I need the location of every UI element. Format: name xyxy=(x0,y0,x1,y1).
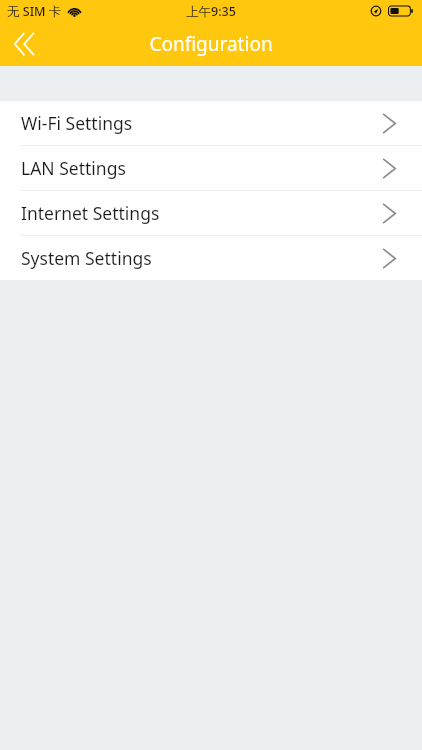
button[interactable]: Back xyxy=(0,22,54,66)
staticText: System Settings xyxy=(21,246,152,270)
button[interactable]: Internet Settings xyxy=(0,191,422,235)
button[interactable]: System Settings xyxy=(0,236,422,280)
staticText: Wi-Fi Settings xyxy=(21,111,133,135)
staticText: Configuration xyxy=(149,31,273,57)
staticText: LAN Settings xyxy=(21,156,126,180)
staticText: 上午9:35 xyxy=(186,3,236,20)
button[interactable]: LAN Settings xyxy=(0,146,422,190)
staticText: 无 SIM 卡 xyxy=(7,3,62,20)
staticText: Internet Settings xyxy=(21,201,160,225)
button[interactable]: Wi-Fi Settings xyxy=(0,101,422,145)
